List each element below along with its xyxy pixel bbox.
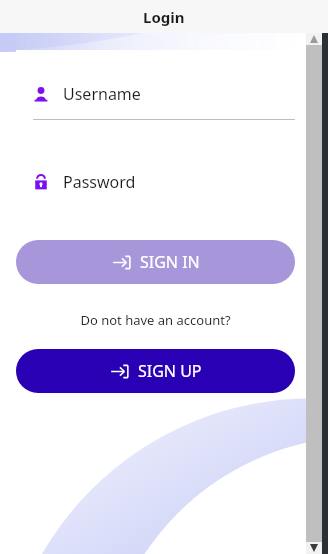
staticText: Password (63, 171, 136, 193)
button[interactable]: Sign up (16, 349, 295, 393)
button[interactable]: Scroll down (306, 542, 322, 554)
button[interactable]: Scroll up (306, 33, 322, 45)
staticText: SIGN UP (138, 360, 202, 382)
staticText: SIGN IN (140, 251, 200, 273)
staticText: Login (143, 7, 185, 27)
button[interactable]: Sign in (16, 240, 295, 284)
staticText: Do not have an account? (16, 311, 295, 329)
staticText: Username (63, 83, 141, 105)
